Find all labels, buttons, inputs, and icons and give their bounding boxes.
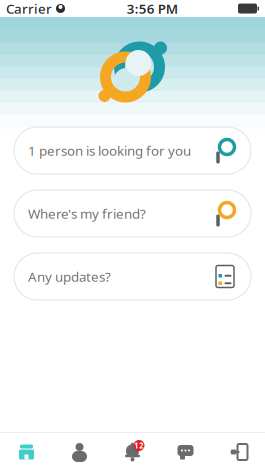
button[interactable]: Where's my friend?: [14, 190, 251, 237]
button[interactable]: Home: [0, 433, 53, 471]
staticText: 1 person is looking for you: [28, 142, 191, 159]
button[interactable]: Log out: [212, 433, 265, 471]
button[interactable]: 1 person is looking for you: [14, 127, 251, 174]
button[interactable]: Any updates?: [14, 253, 251, 300]
staticText: 12: [134, 440, 144, 451]
staticText: 3:56 PM: [127, 0, 178, 17]
staticText: Where's my friend?: [28, 205, 146, 222]
button[interactable]: Notifications: [106, 433, 159, 471]
button[interactable]: Profile: [53, 433, 106, 471]
staticText: Carrier: [6, 0, 52, 17]
staticText: Any updates?: [28, 268, 111, 285]
button[interactable]: Messages: [159, 433, 212, 471]
